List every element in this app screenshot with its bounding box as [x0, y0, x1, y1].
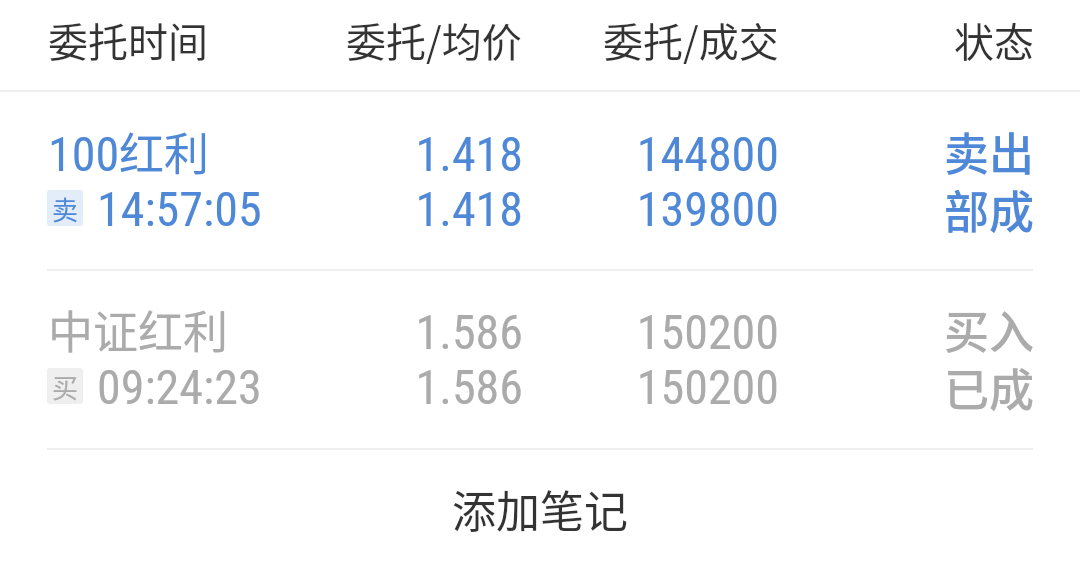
button[interactable]: 添加笔记 — [0, 452, 1080, 565]
staticText: 09:24:23 — [97, 359, 262, 415]
staticText: 委托/成交 — [603, 11, 779, 69]
staticText: 中证红利 — [48, 297, 229, 362]
staticText: 139800 — [559, 181, 779, 237]
staticText: 买入 — [814, 297, 1034, 362]
staticText: 1.418 — [303, 126, 523, 182]
staticText: 已成 — [814, 355, 1034, 420]
staticText: 144800 — [559, 126, 779, 182]
button[interactable]: 100红利 — [0, 90, 1080, 269]
staticText: 状态 — [954, 11, 1034, 69]
staticText: 委托时间 — [48, 11, 208, 69]
staticText: 150200 — [559, 359, 779, 415]
staticText: 委托/均价 — [346, 11, 522, 69]
staticText: 14:57:05 — [97, 181, 262, 237]
staticText: 1.418 — [303, 181, 523, 237]
staticText: 添加笔记 — [452, 477, 628, 541]
staticText: 100红利 — [48, 119, 210, 184]
staticText: 1.586 — [303, 304, 523, 360]
staticText: 卖 — [52, 190, 79, 226]
staticText: 1.586 — [303, 359, 523, 415]
staticText: 卖出 — [814, 119, 1034, 184]
staticText: 部成 — [814, 177, 1034, 242]
staticText: 买 — [52, 368, 79, 404]
button[interactable]: 中证红利 — [0, 269, 1080, 448]
staticText: 150200 — [559, 304, 779, 360]
